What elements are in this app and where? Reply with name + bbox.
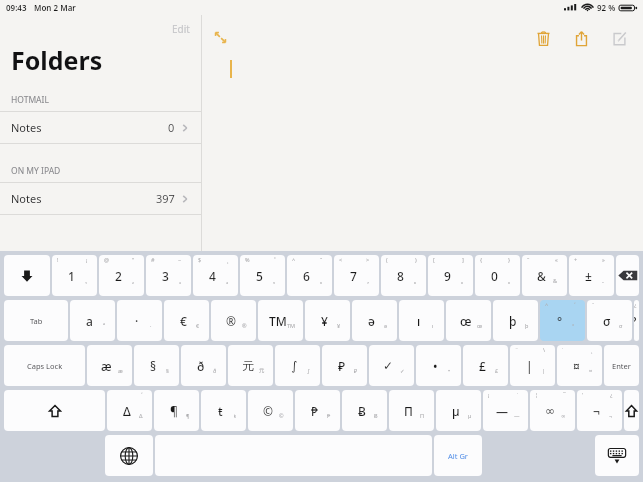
staticText: € (180, 313, 187, 329)
button[interactable]: ± (569, 255, 614, 296)
staticText: ° (557, 313, 563, 329)
button[interactable]: Caps Lock (4, 345, 85, 386)
button[interactable]: 1 (52, 255, 97, 296)
button[interactable]: · (117, 300, 162, 341)
button[interactable]: a (70, 300, 115, 341)
button[interactable]: Edit (172, 22, 190, 36)
button[interactable]: ∫ (275, 345, 320, 386)
staticText: ¨ (515, 346, 519, 353)
staticText: ₁ (85, 277, 87, 284)
button[interactable]: arrowdown (4, 255, 50, 296)
button[interactable]: Notes (0, 183, 201, 214)
button[interactable]: Π (389, 390, 434, 431)
button[interactable]: shift (624, 390, 639, 431)
button[interactable]: Tab (4, 300, 68, 341)
button[interactable]: σ (587, 300, 632, 341)
button[interactable]: 8 (381, 255, 426, 296)
staticText: Caps Lock (27, 361, 63, 371)
staticText: 6 (303, 268, 310, 284)
button[interactable]: £ (463, 345, 508, 386)
button[interactable]: Expand (210, 27, 230, 47)
staticText: • (433, 358, 438, 374)
button[interactable]: 2 (99, 255, 144, 296)
button[interactable]: Share (568, 25, 595, 52)
staticText: µ (452, 403, 460, 419)
button[interactable]: ¤ (557, 345, 602, 386)
staticText: ® (242, 322, 247, 329)
staticText: » (602, 256, 605, 263)
button[interactable]: Notes (0, 112, 201, 143)
button[interactable]: æ (87, 345, 132, 386)
button[interactable]: ŧ (201, 390, 246, 431)
button[interactable]: ¥ (305, 300, 350, 341)
button[interactable]: ® (211, 300, 256, 341)
staticText: þ (525, 322, 529, 329)
button[interactable]: Alt Gr (434, 435, 482, 476)
staticText: ˇ (320, 256, 323, 263)
button[interactable]: 元 (228, 345, 273, 386)
button[interactable]: ° (540, 300, 585, 341)
staticText: ✓ (383, 359, 394, 373)
staticText: ∫ (307, 368, 310, 374)
staticText: ∞ (545, 404, 555, 418)
staticText: 0 (491, 268, 498, 284)
button[interactable]: € (164, 300, 209, 341)
staticText: 8 (397, 268, 404, 284)
button[interactable]: µ (436, 390, 481, 431)
button[interactable]: | (510, 345, 555, 386)
staticText: < (339, 256, 343, 263)
button[interactable]: œ (446, 300, 491, 341)
staticText: ˅ (141, 391, 143, 398)
button[interactable]: © (248, 390, 293, 431)
staticText: 元 (259, 367, 265, 374)
button[interactable]: del (616, 255, 639, 296)
button[interactable]: Δ (107, 390, 152, 431)
button[interactable]: hide (595, 435, 639, 476)
button[interactable]: shift (4, 390, 105, 431)
staticText: @ (104, 256, 109, 263)
button[interactable]: 9 (428, 255, 473, 296)
button[interactable]: Delete (530, 25, 557, 52)
button[interactable]: 5 (240, 255, 285, 296)
staticText: Notes (11, 120, 42, 135)
button[interactable]: ı (399, 300, 444, 341)
staticText: ₄ (226, 277, 228, 284)
staticText: — (514, 412, 520, 419)
button[interactable]: Ƀ (342, 390, 387, 431)
button[interactable]: ∞ (530, 390, 575, 431)
button[interactable]: ✓ (369, 345, 414, 386)
staticText: ¿ (610, 391, 613, 398)
button[interactable]: • (416, 345, 461, 386)
button[interactable]: 4 (193, 255, 238, 296)
staticText: ¤ (573, 358, 580, 374)
staticText: ₇ (367, 277, 369, 284)
staticText: ˘ (592, 301, 595, 308)
button[interactable]: ₱ (295, 390, 340, 431)
button[interactable]: 3 (146, 255, 191, 296)
staticText: ¥ (321, 313, 328, 329)
button[interactable]: 7 (334, 255, 379, 296)
button[interactable]: New note (606, 25, 633, 52)
staticText: ŧ (218, 403, 223, 419)
button[interactable]: 0 (475, 255, 520, 296)
staticText: Folders (11, 43, 103, 77)
staticText: § (166, 367, 169, 374)
button[interactable]: ¶ (154, 390, 199, 431)
button[interactable]: globe (105, 435, 153, 476)
button[interactable]: — (483, 390, 528, 431)
button[interactable]: ð (181, 345, 226, 386)
button[interactable]: TM (258, 300, 303, 341)
button[interactable]: Enter (604, 345, 639, 386)
staticText: · (150, 322, 152, 329)
button[interactable]: ə (352, 300, 397, 341)
button[interactable]: ₽ (322, 345, 367, 386)
button[interactable]: & (522, 255, 567, 296)
button[interactable]: þ (493, 300, 538, 341)
button[interactable]: § (134, 345, 179, 386)
button[interactable]: 6 (287, 255, 332, 296)
staticText: ¸ (227, 256, 229, 263)
staticText: Ƀ (374, 412, 378, 419)
button[interactable]: ? (634, 300, 639, 341)
button[interactable]: ¬ (577, 390, 622, 431)
